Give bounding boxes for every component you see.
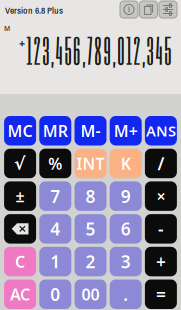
button[interactable]: 4 <box>39 214 71 244</box>
staticText: ± <box>16 185 25 207</box>
button[interactable]: . <box>110 279 142 309</box>
staticText: . <box>123 283 128 306</box>
staticText: M <box>4 24 10 33</box>
button[interactable]: MC <box>4 116 36 145</box>
button[interactable]: 3 <box>110 247 142 276</box>
button[interactable]: 0 <box>39 279 71 309</box>
staticText: INT <box>76 153 104 174</box>
button[interactable]: AC <box>4 279 36 309</box>
staticText: + <box>19 36 25 50</box>
button[interactable]: ± <box>4 181 36 211</box>
staticText: 9 <box>121 185 131 208</box>
staticText: 5 <box>85 217 95 240</box>
button[interactable]: + <box>145 247 177 276</box>
staticText: AC <box>10 284 30 305</box>
button[interactable]: % <box>39 149 71 178</box>
button[interactable]: 5 <box>74 214 106 244</box>
button[interactable]: M+ <box>110 116 142 145</box>
button[interactable]: √ <box>4 149 36 178</box>
button[interactable]: 9 <box>110 181 142 211</box>
button[interactable]: Information <box>120 1 138 18</box>
button[interactable]: INT <box>74 149 106 178</box>
staticText: 1 <box>50 250 60 273</box>
button[interactable]: = <box>145 279 177 309</box>
button[interactable]: 00 <box>74 279 106 309</box>
staticText: 4 <box>50 217 60 240</box>
staticText: C <box>15 251 25 272</box>
button[interactable]: 2 <box>74 247 106 276</box>
staticText: 123,456,789,012,345 <box>26 28 171 72</box>
staticText: M- <box>80 120 100 141</box>
staticText: 8 <box>85 185 95 208</box>
staticText: ANS <box>146 121 176 140</box>
button[interactable]: C <box>4 247 36 276</box>
staticText: 2 <box>85 250 95 273</box>
staticText: 7 <box>50 185 60 208</box>
staticText: × <box>156 185 165 207</box>
staticText: / <box>157 152 164 175</box>
staticText: = <box>156 283 166 306</box>
staticText: K <box>121 153 131 174</box>
button[interactable]: Backspace <box>4 214 36 244</box>
button[interactable]: Settings <box>159 1 177 18</box>
button[interactable]: 1 <box>39 247 71 276</box>
staticText: MC <box>8 120 33 141</box>
staticText: 6 <box>121 217 131 240</box>
button[interactable]: / <box>145 149 177 178</box>
staticText: Version 6.8 Plus <box>5 4 63 17</box>
button[interactable]: ANS <box>145 116 177 145</box>
button[interactable]: × <box>145 181 177 211</box>
staticText: MR <box>43 120 68 141</box>
staticText: 00 <box>81 284 99 305</box>
button[interactable]: M- <box>74 116 106 145</box>
staticText: 3 <box>121 250 131 273</box>
button[interactable]: Copy <box>139 1 157 18</box>
button[interactable]: 6 <box>110 214 142 244</box>
button[interactable]: - <box>145 214 177 244</box>
button[interactable]: 7 <box>39 181 71 211</box>
button[interactable]: MR <box>39 116 71 145</box>
staticText: + <box>156 250 166 273</box>
staticText: √ <box>14 154 26 173</box>
button[interactable]: 8 <box>74 181 106 211</box>
staticText: 0 <box>50 283 60 306</box>
staticText: M+ <box>114 120 138 141</box>
button[interactable]: K <box>110 149 142 178</box>
staticText: % <box>48 153 62 174</box>
staticText: - <box>158 217 164 240</box>
